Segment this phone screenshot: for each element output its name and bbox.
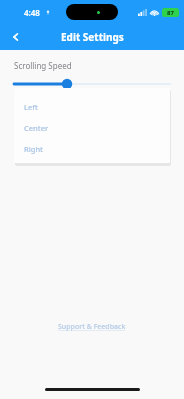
staticText: Left xyxy=(24,102,38,112)
staticText: Support & Feedback xyxy=(58,322,126,332)
staticText: Scrolling Speed xyxy=(14,60,72,71)
button[interactable]: Back xyxy=(3,24,29,50)
staticText: Right xyxy=(24,144,43,154)
button[interactable]: Support & Feedback xyxy=(52,319,132,335)
staticText: Edit Settings xyxy=(61,30,124,44)
button[interactable]: Left xyxy=(14,96,170,117)
staticText: Center xyxy=(24,123,49,133)
button[interactable]: Scrolling Speed slider xyxy=(14,77,170,91)
staticText: 4:48 xyxy=(24,7,40,18)
button[interactable]: Right xyxy=(14,138,170,159)
button[interactable]: Center xyxy=(14,117,170,138)
staticText: 87 xyxy=(167,9,174,17)
